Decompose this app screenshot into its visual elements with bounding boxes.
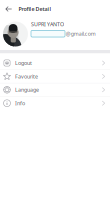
staticText: Favourite [15, 73, 38, 80]
staticText: Info [15, 100, 25, 107]
button[interactable]: Language [0, 83, 110, 96]
staticText: Profile Detail [18, 5, 51, 13]
staticText: Language [15, 86, 39, 93]
button[interactable]: Back [0, 0, 13, 18]
button[interactable]: Logout [0, 56, 110, 69]
staticText: @gmail.com [66, 30, 96, 37]
staticText: SUPRI YANTO [31, 21, 64, 28]
button[interactable]: Favourite [0, 70, 110, 83]
button[interactable]: Info [0, 97, 110, 110]
staticText: Logout [15, 59, 32, 67]
